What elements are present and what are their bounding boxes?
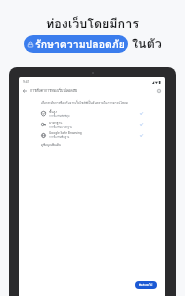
staticText: การป้องกันมาตรฐาน (49, 125, 73, 129)
staticText: 9:41 (23, 80, 30, 84)
staticText: การตั้งค่าการท่องเว็บปลอดภัย (30, 88, 78, 94)
staticText: ขั้นสูง (49, 109, 57, 114)
staticText: ดูข้อมูลเพิ่มเติม (41, 142, 62, 147)
staticText: เลือกระดับการป้องกันจากเว็บไซต์ที่เป็นอั… (41, 100, 128, 105)
staticText: การป้องกันที่ดีที่สุด (49, 114, 70, 118)
button[interactable]: Google Safe Browsing (41, 131, 159, 139)
staticText: รักษาความปลอดภัย (35, 36, 125, 53)
staticText: Google Safe Browsing (49, 131, 82, 135)
button[interactable]: Help (155, 87, 162, 94)
staticText: ท่องเว็บโดยมีการ (46, 14, 139, 34)
button[interactable]: ขั้นสูง (41, 109, 159, 118)
staticText: มาตรฐาน (49, 120, 63, 125)
staticText: ยืนยัน​ต่อไป (139, 283, 153, 287)
button[interactable]: Back (21, 87, 28, 94)
button[interactable]: มาตรฐาน (41, 120, 159, 129)
staticText: การป้องกันพื้นฐาน (49, 135, 70, 139)
button[interactable]: ยืนยัน​ต่อไป (135, 281, 157, 289)
staticText: ในตัว (132, 34, 162, 54)
